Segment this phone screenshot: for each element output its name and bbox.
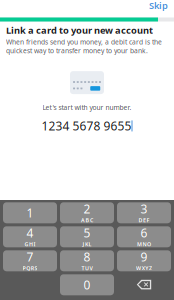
- staticText: PQRS: [23, 265, 37, 272]
- button[interactable]: 8: [60, 250, 114, 271]
- button[interactable]: Skip: [143, 0, 174, 17]
- staticText: 6: [140, 225, 147, 241]
- staticText: 4: [26, 225, 33, 241]
- button[interactable]: 1: [3, 202, 57, 223]
- button[interactable]: 0: [60, 274, 114, 295]
- staticText: MNO: [137, 241, 151, 248]
- staticText: JKL: [82, 241, 92, 248]
- staticText: GHI: [24, 241, 36, 248]
- staticText: 5: [83, 225, 90, 241]
- staticText: 7: [26, 249, 33, 265]
- staticText: ABC: [81, 217, 93, 224]
- staticText: 9: [140, 249, 147, 265]
- staticText: TUV: [81, 265, 93, 272]
- staticText: 1: [26, 205, 33, 221]
- button[interactable]: 6: [117, 226, 171, 247]
- button[interactable]: 4: [3, 226, 57, 247]
- button[interactable]: Delete: [117, 274, 171, 295]
- button[interactable]: 9: [117, 250, 171, 271]
- staticText: WXYZ: [136, 265, 152, 272]
- staticText: DEF: [138, 217, 150, 224]
- staticText: Skip: [149, 0, 168, 12]
- staticText: Let's start with your number.: [42, 103, 131, 112]
- staticText: When friends send you money, a debit car…: [6, 37, 162, 55]
- button[interactable]: 3: [117, 202, 171, 223]
- staticText: 1234 5678 9655: [41, 118, 131, 134]
- staticText: 0: [83, 277, 90, 293]
- staticText: 8: [83, 249, 90, 265]
- staticText: 2: [83, 201, 90, 217]
- staticText: 3: [140, 201, 147, 217]
- button[interactable]: 7: [3, 250, 57, 271]
- staticText: Link a card to your new account: [6, 24, 153, 36]
- button[interactable]: 5: [60, 226, 114, 247]
- button[interactable]: 2: [60, 202, 114, 223]
